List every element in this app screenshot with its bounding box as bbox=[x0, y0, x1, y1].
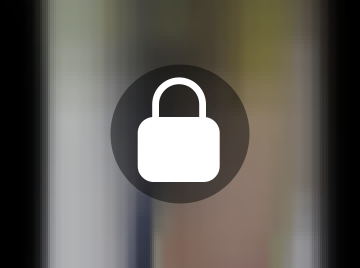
button[interactable]: Locked content bbox=[110, 64, 249, 203]
